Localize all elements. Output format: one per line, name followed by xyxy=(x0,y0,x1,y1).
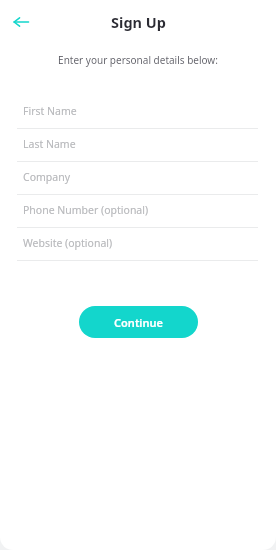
staticText: Last Name xyxy=(23,137,76,151)
button[interactable]: Continue xyxy=(79,306,198,338)
staticText: Sign Up xyxy=(111,12,166,32)
staticText: Enter your personal details below: xyxy=(0,53,276,67)
staticText: Continue xyxy=(114,315,163,330)
staticText: Company xyxy=(23,170,70,184)
button[interactable]: First Name xyxy=(0,96,276,129)
staticText: Website (optional) xyxy=(23,236,113,250)
button[interactable]: Phone Number (optional) xyxy=(0,195,276,228)
button[interactable]: Website (optional) xyxy=(0,228,276,261)
button[interactable]: Back xyxy=(6,7,36,37)
staticText: First Name xyxy=(23,104,77,118)
button[interactable]: Company xyxy=(0,162,276,195)
button[interactable]: Last Name xyxy=(0,129,276,162)
staticText: Phone Number (optional) xyxy=(23,203,149,217)
